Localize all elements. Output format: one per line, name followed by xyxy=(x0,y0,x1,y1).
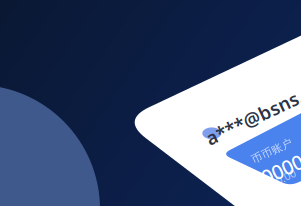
staticText: 0.000000 xyxy=(244,155,301,181)
staticText: 币币账户 xyxy=(250,144,294,157)
staticText: a***@bsns.com xyxy=(200,97,301,121)
staticText: $0.00 xyxy=(269,171,296,185)
